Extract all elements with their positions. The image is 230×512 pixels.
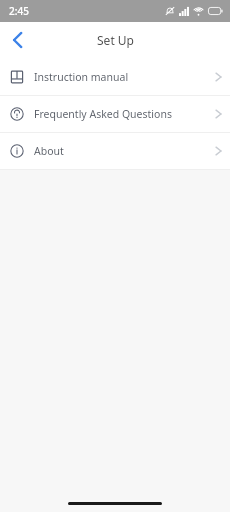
staticText: Set Up (97, 32, 134, 48)
staticText: 2:45 (9, 4, 29, 18)
button[interactable]: Instruction manual (0, 59, 230, 95)
button[interactable]: About (0, 133, 230, 169)
button[interactable]: Back (0, 22, 34, 57)
button[interactable]: Frequently Asked Questions (0, 96, 230, 132)
staticText: Frequently Asked Questions (34, 107, 215, 121)
staticText: About (34, 144, 215, 158)
staticText: Instruction manual (34, 70, 215, 84)
